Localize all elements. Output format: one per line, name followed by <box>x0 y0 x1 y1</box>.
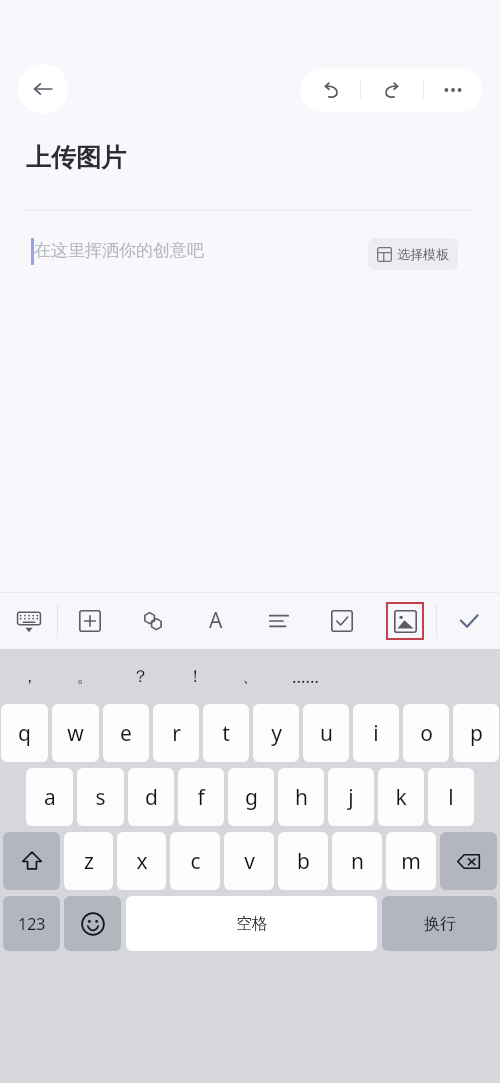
staticText: A <box>209 606 223 635</box>
button[interactable]: 123 <box>3 896 60 951</box>
button[interactable]: i <box>353 704 399 762</box>
button[interactable]: m <box>386 832 436 890</box>
button[interactable]: q <box>1 704 48 762</box>
button[interactable]: Checklist <box>310 592 373 649</box>
staticText: 、 <box>242 666 259 687</box>
button[interactable]: c <box>170 832 220 890</box>
button[interactable]: o <box>403 704 449 762</box>
button[interactable]: b <box>278 832 328 890</box>
button[interactable]: Redo <box>361 68 423 112</box>
staticText: y <box>271 719 282 748</box>
staticText: 选择模板 <box>397 246 449 262</box>
button[interactable]: s <box>77 768 124 826</box>
button[interactable]: h <box>278 768 324 826</box>
staticText: q <box>18 719 31 748</box>
button[interactable]: Insert image <box>373 592 436 649</box>
button[interactable]: 空格 <box>126 896 377 951</box>
button[interactable]: Link <box>121 592 184 649</box>
button[interactable]: n <box>332 832 382 890</box>
button[interactable]: a <box>26 768 73 826</box>
button[interactable]: e <box>103 704 149 762</box>
staticText: w <box>67 719 84 748</box>
button[interactable]: v <box>224 832 274 890</box>
staticText: k <box>395 783 407 812</box>
button[interactable]: y <box>253 704 299 762</box>
staticText: o <box>420 719 433 748</box>
staticText: n <box>351 847 364 876</box>
button[interactable]: z <box>64 832 113 890</box>
staticText: d <box>145 783 158 812</box>
staticText: z <box>84 847 94 876</box>
button[interactable]: Undo <box>300 68 360 112</box>
staticText: h <box>295 783 308 812</box>
staticText: f <box>197 783 205 812</box>
button[interactable]: Align <box>247 592 310 649</box>
staticText: i <box>373 719 379 748</box>
button[interactable]: j <box>328 768 374 826</box>
staticText: r <box>172 719 181 748</box>
button[interactable]: 换行 <box>382 896 497 951</box>
staticText: 在这里挥洒你的创意吧 <box>34 240 204 261</box>
button[interactable]: …… <box>278 649 333 704</box>
staticText: u <box>320 719 333 748</box>
button[interactable]: u <box>303 704 349 762</box>
button[interactable]: Back <box>18 64 68 114</box>
button[interactable]: Hide keyboard <box>0 592 57 649</box>
staticText: g <box>245 783 258 812</box>
button[interactable]: r <box>153 704 199 762</box>
staticText: 换行 <box>424 914 456 934</box>
button[interactable]: ， <box>0 649 58 704</box>
button[interactable]: Text style <box>184 592 247 649</box>
staticText: s <box>95 783 106 812</box>
button[interactable]: Insert <box>58 592 121 649</box>
button[interactable]: 。 <box>58 649 113 704</box>
staticText: 。 <box>77 666 94 687</box>
staticText: …… <box>292 665 319 688</box>
button[interactable]: p <box>453 704 499 762</box>
button[interactable]: x <box>117 832 166 890</box>
staticText: ！ <box>187 666 204 687</box>
staticText: v <box>244 847 255 876</box>
button[interactable]: Emoji <box>64 896 121 951</box>
staticText: a <box>44 783 56 812</box>
button[interactable]: ？ <box>113 649 168 704</box>
button[interactable]: Backspace <box>440 832 497 890</box>
staticText: 空格 <box>236 914 268 934</box>
button[interactable]: 选择模板 <box>368 238 458 270</box>
button[interactable]: Shift <box>3 832 60 890</box>
staticText: m <box>401 847 421 876</box>
button[interactable]: w <box>52 704 99 762</box>
button[interactable]: Confirm <box>437 592 500 649</box>
staticText: 上传图片 <box>26 142 126 173</box>
button[interactable]: l <box>428 768 474 826</box>
staticText: ？ <box>132 666 149 687</box>
staticText: x <box>136 847 148 876</box>
button[interactable]: 、 <box>223 649 278 704</box>
button[interactable]: k <box>378 768 424 826</box>
staticText: l <box>448 783 454 812</box>
staticText: j <box>348 783 354 812</box>
button[interactable]: ！ <box>168 649 223 704</box>
staticText: 123 <box>18 913 46 935</box>
button[interactable]: f <box>178 768 224 826</box>
button[interactable]: t <box>203 704 249 762</box>
staticText: c <box>190 847 201 876</box>
staticText: p <box>470 719 483 748</box>
button[interactable]: More options <box>424 68 482 112</box>
button[interactable]: g <box>228 768 274 826</box>
staticText: b <box>297 847 310 876</box>
staticText: t <box>222 719 230 748</box>
staticText: ， <box>21 666 38 687</box>
staticText: e <box>120 719 132 748</box>
button[interactable]: d <box>128 768 174 826</box>
